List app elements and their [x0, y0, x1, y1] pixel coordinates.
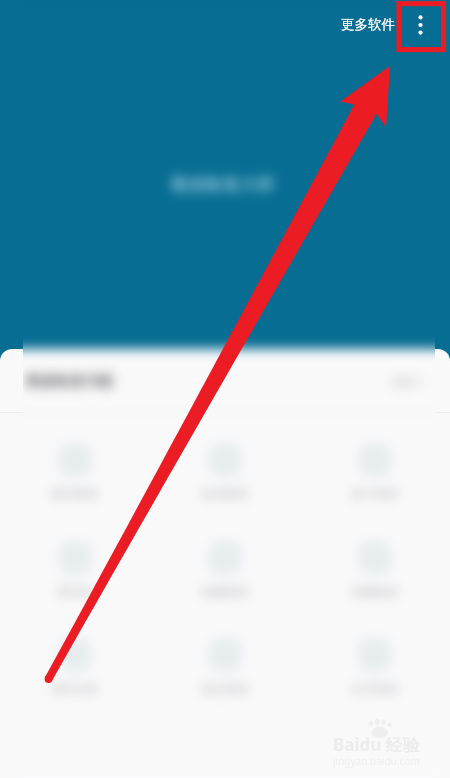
button[interactable]: 通讯录 — [0, 541, 150, 599]
staticText: 数据恢复大师 — [172, 174, 274, 195]
button[interactable]: 视频恢复 — [150, 541, 300, 599]
button[interactable]: 音频恢复 — [300, 541, 450, 599]
staticText: 数据恢复功能 — [26, 372, 113, 390]
button[interactable]: 短信恢复 — [150, 443, 300, 501]
staticText: 视频恢复 — [201, 584, 249, 599]
button[interactable]: 微信恢复 — [0, 443, 150, 501]
button[interactable]: 通话记录 — [0, 638, 150, 696]
staticText: 数据恢复大师 — [172, 174, 274, 195]
button[interactable]: More options — [398, 1, 446, 52]
button[interactable]: 备忘恢复 — [150, 638, 300, 696]
button[interactable]: 文件恢复 — [300, 638, 450, 696]
staticText: Baidu 经验 — [333, 733, 420, 756]
staticText: 音频恢复 — [351, 584, 399, 599]
staticText: 视频恢复 — [201, 584, 249, 599]
button[interactable]: 文件恢复 — [300, 638, 450, 696]
button[interactable]: 微信恢复 — [0, 443, 150, 501]
button[interactable]: 照片恢复 — [300, 443, 450, 501]
staticText: 通讯录 — [57, 584, 93, 599]
staticText: 更多 > — [392, 373, 426, 389]
staticText: 数据恢复功能 — [26, 372, 113, 390]
staticText: 更多软件 — [341, 16, 395, 33]
button[interactable]: 通话记录 — [0, 638, 150, 696]
button[interactable]: 短信恢复 — [150, 443, 300, 501]
button[interactable]: 照片恢复 — [300, 443, 450, 501]
staticText: 更多 > — [392, 373, 426, 389]
button[interactable]: 通讯录 — [0, 541, 150, 599]
button[interactable]: 视频恢复 — [150, 541, 300, 599]
staticText: 通话记录 — [51, 681, 99, 696]
staticText: 音频恢复 — [351, 584, 399, 599]
staticText: 通话记录 — [51, 681, 99, 696]
button[interactable]: 备忘恢复 — [150, 638, 300, 696]
button[interactable]: 音频恢复 — [300, 541, 450, 599]
staticText: jingyan.baidu.com — [333, 754, 420, 768]
button[interactable]: 更多软件 — [341, 16, 395, 33]
staticText: 通讯录 — [57, 584, 93, 599]
